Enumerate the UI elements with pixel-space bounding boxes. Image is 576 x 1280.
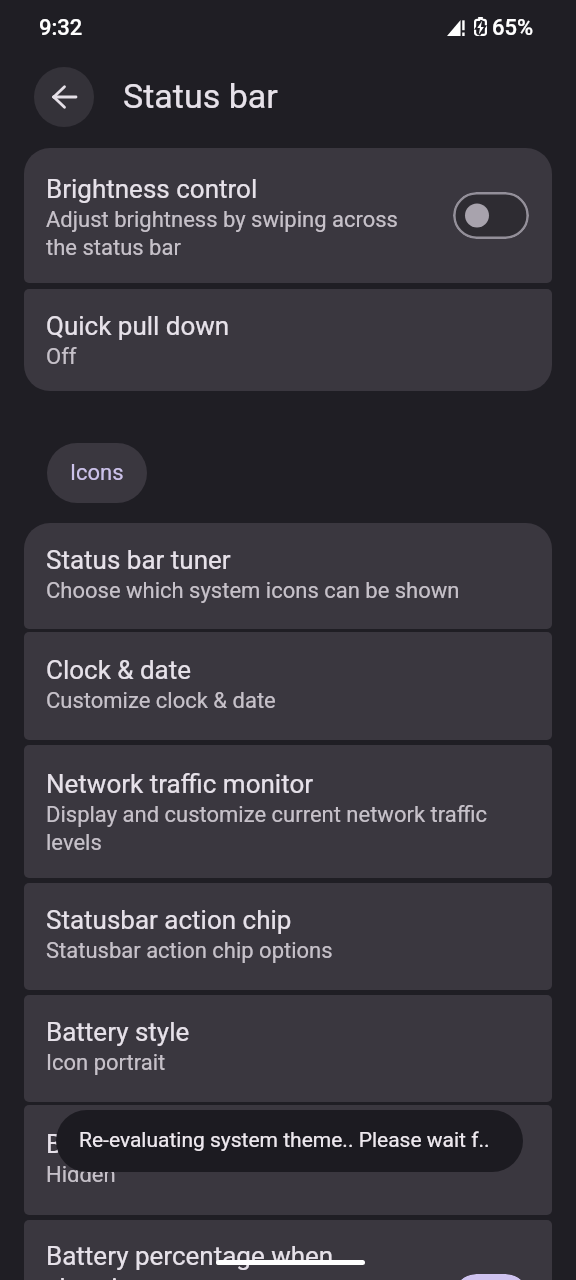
button[interactable]: Network traffic monitor bbox=[24, 745, 552, 878]
button[interactable]: Battery percentage when charging bbox=[24, 1220, 552, 1280]
staticText: Hidden bbox=[46, 1162, 116, 1188]
button[interactable]: Battery style bbox=[24, 995, 552, 1102]
button[interactable]: Status bar tuner bbox=[24, 523, 552, 629]
staticText: Battery percentage when charging bbox=[46, 1241, 346, 1280]
staticText: Customize clock & date bbox=[46, 688, 276, 714]
staticText: Status bar bbox=[123, 76, 278, 116]
staticText: Statusbar action chip bbox=[46, 905, 292, 935]
staticText: 9:32 bbox=[39, 15, 83, 41]
staticText: Clock & date bbox=[46, 655, 192, 685]
button[interactable]: Back bbox=[34, 67, 94, 127]
button[interactable]: Icons bbox=[47, 443, 147, 503]
staticText: Icon portrait bbox=[46, 1050, 166, 1076]
staticText: Battery style bbox=[46, 1017, 190, 1047]
staticText: Choose which system icons can be shown bbox=[46, 578, 460, 604]
staticText: Display and customize current network tr… bbox=[46, 802, 526, 856]
staticText: Brightness control bbox=[46, 174, 258, 204]
button[interactable]: Battery percentage when charging toggle bbox=[453, 1274, 529, 1280]
button[interactable]: Battery percentage bbox=[24, 1105, 552, 1215]
staticText: Status bar tuner bbox=[46, 545, 231, 575]
button[interactable]: Statusbar action chip bbox=[24, 883, 552, 990]
staticText: 65% bbox=[492, 15, 534, 41]
button[interactable]: Quick pull down bbox=[24, 289, 552, 391]
button[interactable]: Brightness control bbox=[24, 148, 552, 283]
staticText: Icons bbox=[70, 460, 124, 486]
staticText: Re-evaluating system theme.. Please wait… bbox=[79, 1128, 490, 1153]
staticText: Quick pull down bbox=[46, 311, 230, 341]
staticText: Battery percentage bbox=[46, 1129, 265, 1159]
staticText: Adjust brightness by swiping across the … bbox=[46, 207, 426, 261]
staticText: Statusbar action chip options bbox=[46, 938, 333, 964]
button[interactable]: Brightness control toggle bbox=[453, 192, 529, 239]
staticText: Network traffic monitor bbox=[46, 769, 314, 799]
staticText: Off bbox=[46, 344, 77, 370]
button[interactable]: Clock & date bbox=[24, 632, 552, 740]
